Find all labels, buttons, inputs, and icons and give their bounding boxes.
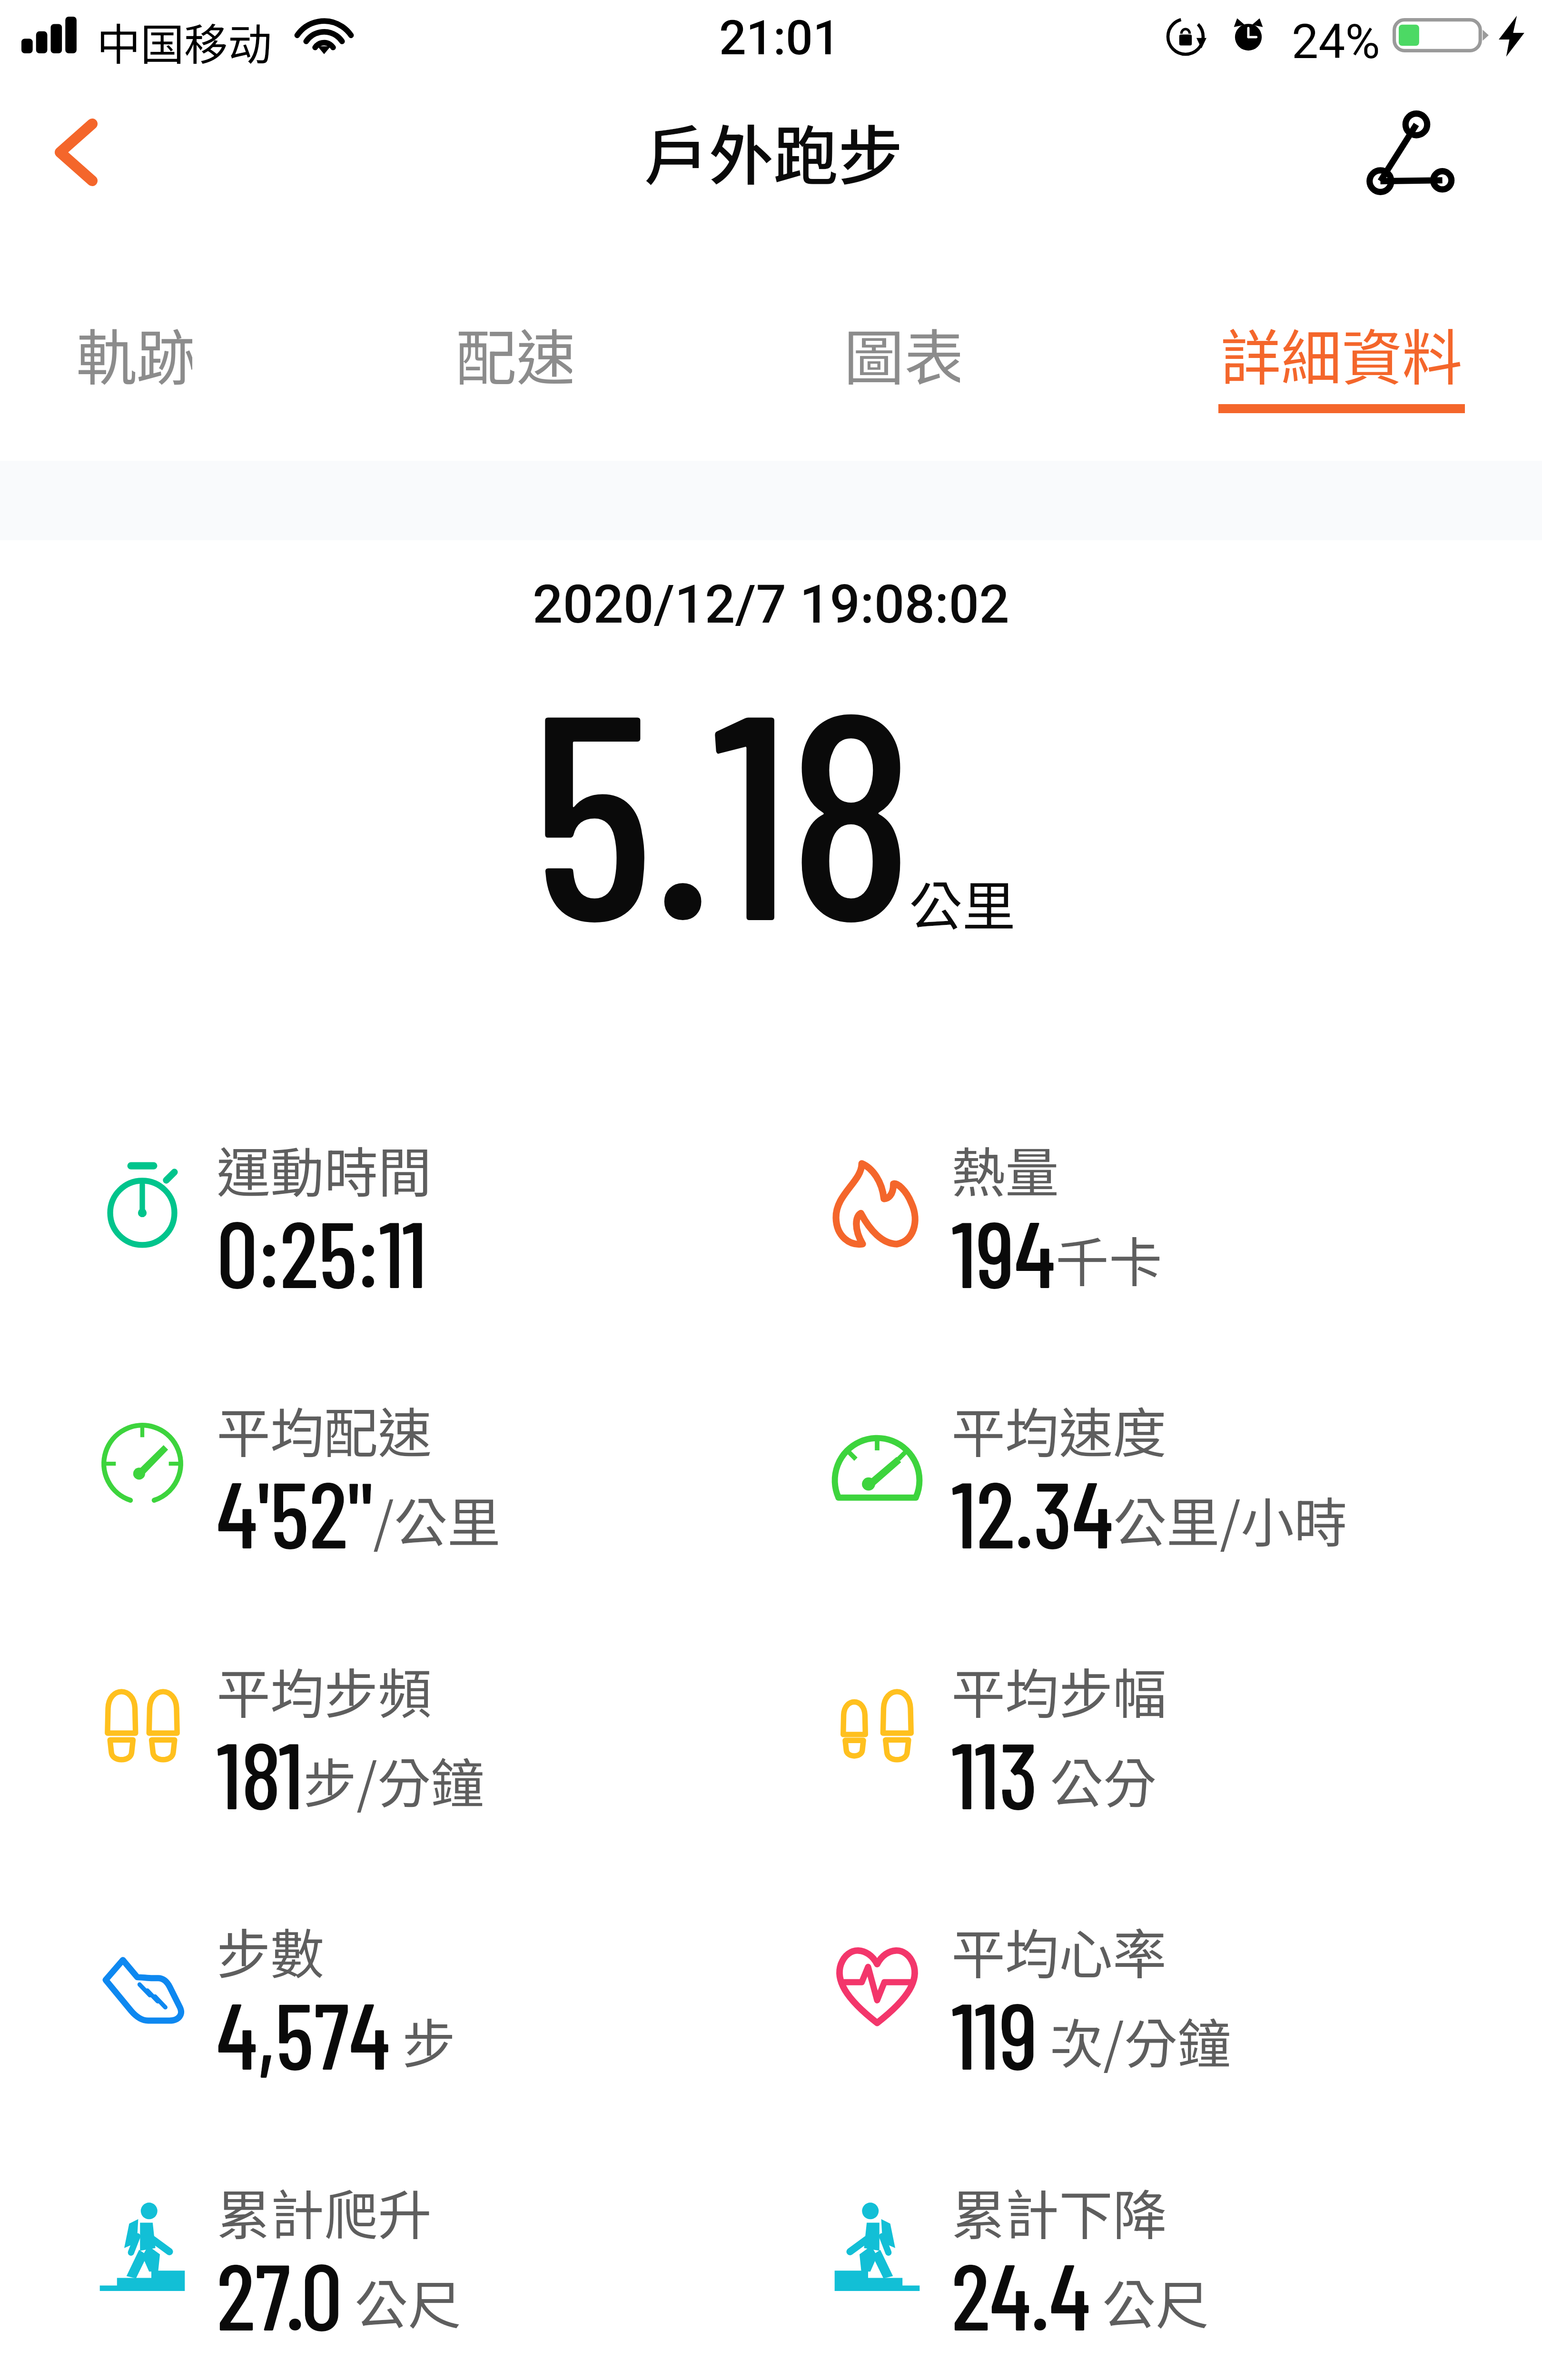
staticText: 步 xyxy=(390,2002,456,2079)
staticText: 119 xyxy=(951,1977,1038,2088)
staticText: 公里/小時 xyxy=(1113,1480,1347,1557)
button[interactable]: 平均步頻 xyxy=(97,1660,716,1836)
staticText: 公尺 xyxy=(1090,2262,1209,2340)
staticText: /公里 xyxy=(373,1480,501,1557)
staticText: 194 xyxy=(951,1195,1056,1307)
staticText: 5.18 xyxy=(532,631,913,978)
staticText: 平均步頻 xyxy=(217,1651,432,1729)
staticText: 平均配速 xyxy=(217,1390,432,1468)
staticText: 詳細資料 xyxy=(1221,310,1463,397)
staticText: 公里 xyxy=(909,864,1016,941)
staticText: 12.34 xyxy=(951,1456,1113,1567)
staticText: 圖表 xyxy=(844,310,960,397)
button[interactable]: 累計下降 xyxy=(832,2182,1451,2358)
staticText: 公尺 xyxy=(343,2262,462,2340)
staticText: 2020/12/7 19:08:02 xyxy=(0,573,1542,635)
staticText: 平均步幅 xyxy=(951,1651,1166,1729)
staticText: 次/分鐘 xyxy=(1038,2002,1231,2079)
staticText: 步數 xyxy=(217,1912,324,1990)
staticText: 4,574 xyxy=(217,1977,390,2088)
button[interactable]: 運動時間 xyxy=(97,1139,716,1315)
staticText: 24.4 xyxy=(951,2238,1090,2349)
staticText: 千卡 xyxy=(1056,1220,1162,1297)
staticText: 0:25:11 xyxy=(217,1195,427,1307)
staticText: 4'52" xyxy=(217,1456,373,1567)
staticText: 113 xyxy=(951,1716,1038,1828)
button[interactable]: 平均心率 xyxy=(832,1921,1451,2097)
staticText: 中国移动 xyxy=(97,10,272,73)
staticText: 平均心率 xyxy=(951,1912,1166,1990)
button[interactable]: Share xyxy=(1364,107,1459,202)
staticText: 181 xyxy=(217,1716,303,1828)
button[interactable]: Back xyxy=(31,102,126,198)
staticText: 步/分鐘 xyxy=(303,1741,484,1818)
staticText: 運動時間 xyxy=(217,1130,432,1208)
button[interactable]: 步數 xyxy=(97,1921,716,2097)
staticText: 熱量 xyxy=(951,1130,1059,1208)
button[interactable]: 圖表 xyxy=(844,310,960,397)
button[interactable]: 配速 xyxy=(456,310,572,397)
staticText: 配速 xyxy=(456,310,572,397)
staticText: 累計爬升 xyxy=(217,2172,432,2251)
staticText: 平均速度 xyxy=(951,1390,1166,1468)
button[interactable]: 詳細資料 xyxy=(1218,310,1465,413)
button[interactable]: 熱量 xyxy=(832,1139,1451,1315)
button[interactable]: 軌跡 xyxy=(76,310,192,397)
staticText: 21:01 xyxy=(719,10,840,66)
button[interactable]: 累計爬升 xyxy=(97,2182,716,2358)
staticText: 公分 xyxy=(1038,1741,1157,1818)
staticText: 累計下降 xyxy=(951,2172,1166,2251)
staticText: 27.0 xyxy=(217,2238,343,2349)
button[interactable]: 平均配速 xyxy=(97,1399,716,1576)
button[interactable]: 平均速度 xyxy=(832,1399,1451,1576)
staticText: 24% xyxy=(1292,14,1380,69)
staticText: 軌跡 xyxy=(76,310,192,397)
button[interactable]: 平均步幅 xyxy=(832,1660,1451,1836)
staticText: 戶外跑步 xyxy=(644,104,903,198)
